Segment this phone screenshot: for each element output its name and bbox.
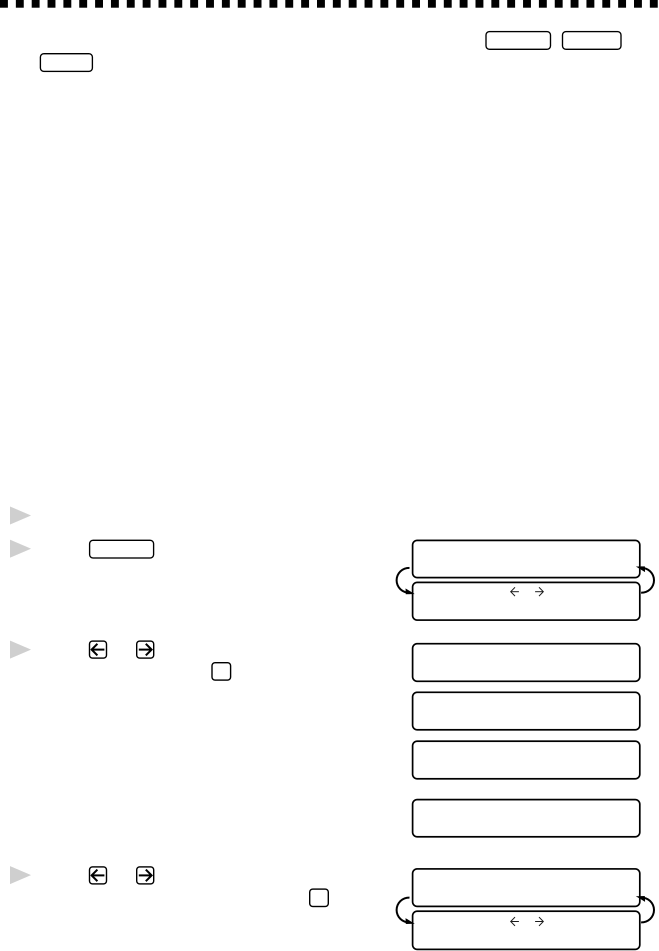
button[interactable]: Toolbar item 2 xyxy=(562,32,621,49)
button[interactable]: Toggle xyxy=(310,889,328,906)
button[interactable]: Toggle xyxy=(212,663,231,680)
button[interactable]: Back xyxy=(89,867,106,884)
button[interactable]: Card 6 xyxy=(413,800,640,837)
button[interactable]: Card 2 xyxy=(413,582,640,620)
button[interactable]: Card 1 xyxy=(413,540,640,578)
button[interactable]: Title xyxy=(40,54,92,71)
button[interactable]: Card 8 xyxy=(413,911,640,949)
button[interactable]: Card 4 xyxy=(413,692,640,730)
button[interactable]: Card 3 xyxy=(413,644,640,681)
button[interactable]: Toolbar item 1 xyxy=(486,32,550,49)
button[interactable]: Row label xyxy=(90,540,154,558)
button[interactable]: Forward xyxy=(137,867,154,884)
button[interactable]: Back xyxy=(89,641,106,658)
button[interactable]: Forward xyxy=(137,641,154,658)
button[interactable]: Card 5 xyxy=(413,741,640,779)
button[interactable]: Card 7 xyxy=(413,869,640,906)
